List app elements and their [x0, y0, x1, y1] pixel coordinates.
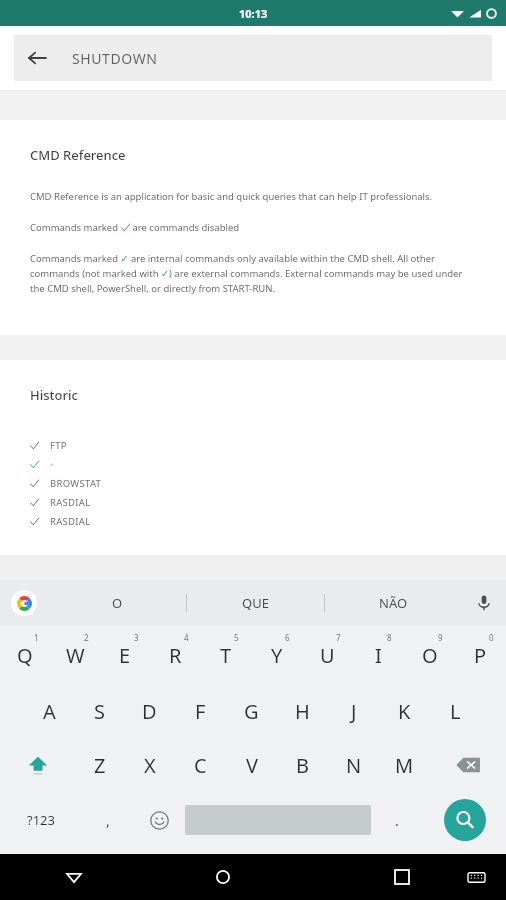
staticText: W	[66, 642, 85, 669]
button[interactable]: D	[124, 684, 175, 738]
button[interactable]: RASDIAL	[30, 512, 476, 531]
button[interactable]: Emoji	[133, 792, 185, 848]
button[interactable]: V	[226, 738, 277, 792]
button[interactable]: C	[175, 738, 226, 792]
button[interactable]: Back	[14, 35, 60, 81]
button[interactable]: O	[48, 580, 186, 626]
button[interactable]: B	[277, 738, 328, 792]
button[interactable]: NÃO	[325, 580, 462, 626]
button[interactable]: Recent apps	[297, 854, 446, 900]
staticText: N	[346, 752, 362, 779]
staticText: Z	[94, 752, 106, 779]
button[interactable]: .	[371, 792, 423, 848]
button[interactable]: N	[328, 738, 379, 792]
staticText: H	[295, 698, 310, 725]
button[interactable]: Shift	[0, 738, 75, 792]
button[interactable]: Home	[148, 854, 297, 900]
staticText: RASDIAL	[50, 496, 91, 509]
button[interactable]: P	[455, 626, 506, 684]
button[interactable]: Q	[0, 626, 50, 684]
staticText: J	[351, 698, 357, 725]
button[interactable]: S	[74, 684, 124, 738]
button[interactable]: U	[302, 626, 353, 684]
staticText: Q	[17, 642, 33, 669]
staticText: Historic	[30, 386, 78, 404]
button[interactable]: L	[430, 684, 481, 738]
button[interactable]: Search	[423, 792, 506, 848]
staticText: K	[398, 698, 411, 725]
staticText: Commands marked	[30, 221, 121, 234]
button[interactable]: •	[30, 455, 476, 474]
staticText: L	[450, 698, 461, 725]
staticText: T	[220, 642, 232, 669]
button[interactable]: Hide keyboard	[446, 854, 506, 900]
staticText: A	[43, 698, 56, 725]
staticText: .	[395, 811, 399, 830]
staticText: 5	[234, 632, 239, 643]
staticText: Y	[271, 642, 283, 669]
button[interactable]: FTP	[30, 436, 476, 455]
staticText: FTP	[50, 439, 67, 452]
button[interactable]: Voice input	[462, 580, 506, 626]
button[interactable]: F	[175, 684, 226, 738]
staticText: 6	[285, 632, 290, 643]
staticText: 2	[84, 632, 89, 643]
button[interactable]: O	[404, 626, 455, 684]
staticText: U	[320, 642, 335, 669]
button[interactable]: ?123	[0, 792, 82, 848]
button[interactable]: T	[200, 626, 251, 684]
staticText: NÃO	[379, 594, 408, 612]
button[interactable]: W	[50, 626, 100, 684]
button[interactable]: M	[379, 738, 430, 792]
staticText: 10:13	[239, 6, 268, 21]
staticText: CMD Reference is an application for basi…	[30, 190, 433, 203]
staticText: I	[375, 642, 382, 669]
button[interactable]: G	[226, 684, 277, 738]
button[interactable]: K	[379, 684, 430, 738]
staticText: C	[194, 752, 207, 779]
button[interactable]: BROWSTAT	[30, 474, 476, 493]
staticText: S	[94, 698, 105, 725]
button[interactable]: I	[353, 626, 404, 684]
staticText: B	[296, 752, 309, 779]
button[interactable]: Back	[0, 854, 148, 900]
button[interactable]: Y	[251, 626, 302, 684]
staticText: 3	[134, 632, 139, 643]
staticText: BROWSTAT	[50, 477, 102, 490]
staticText: 8	[387, 632, 392, 643]
button[interactable]: X	[125, 738, 175, 792]
staticText: SHUTDOWN	[72, 49, 158, 68]
staticText: RASDIAL	[50, 515, 91, 528]
staticText: O	[112, 594, 123, 612]
button[interactable]: RASDIAL	[30, 493, 476, 512]
button[interactable]: Backspace	[430, 738, 506, 792]
button[interactable]: Google	[0, 580, 48, 626]
staticText: D	[142, 698, 157, 725]
staticText: G	[244, 698, 259, 725]
staticText: Commands marked ✓ are internal commands …	[30, 252, 476, 295]
button[interactable]: E	[100, 626, 150, 684]
staticText: ?123	[27, 811, 55, 829]
button[interactable]: A	[24, 684, 74, 738]
staticText: are commands disabled	[130, 221, 240, 234]
staticText: •	[50, 458, 54, 471]
staticText: ,	[106, 811, 110, 830]
button[interactable]: H	[277, 684, 328, 738]
staticText: QUE	[242, 594, 269, 612]
button[interactable]: Z	[75, 738, 125, 792]
staticText: CMD Reference	[30, 146, 126, 164]
button[interactable]: Back	[14, 35, 492, 81]
staticText: 0	[489, 632, 494, 643]
staticText: 1	[34, 632, 39, 643]
staticText: 9	[438, 632, 443, 643]
button[interactable]: R	[150, 626, 200, 684]
staticText: X	[144, 752, 156, 779]
staticText: F	[195, 698, 206, 725]
staticText: 4	[184, 632, 189, 643]
staticText: R	[169, 642, 182, 669]
staticText: E	[119, 642, 131, 669]
button[interactable]: QUE	[187, 580, 324, 626]
button[interactable]: J	[328, 684, 379, 738]
button[interactable]: ,	[82, 792, 133, 848]
